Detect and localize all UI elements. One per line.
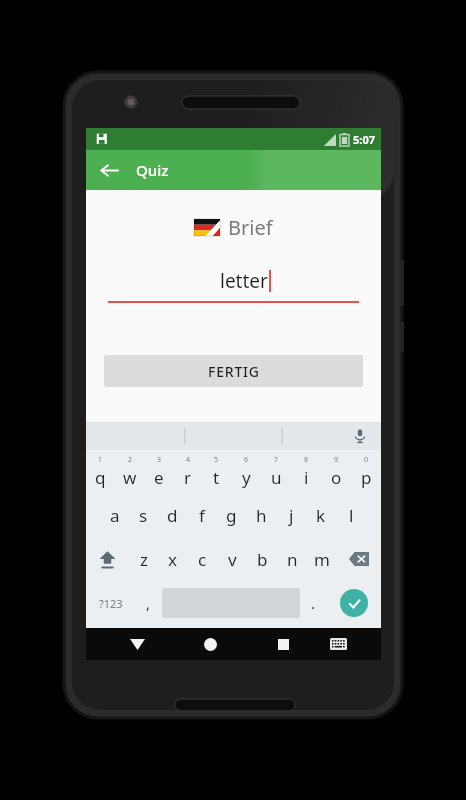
staticText: 2 <box>128 455 133 465</box>
staticText: f <box>199 504 205 527</box>
staticText: c <box>198 548 207 571</box>
staticText: l <box>349 504 354 527</box>
staticText: z <box>140 548 148 571</box>
button[interactable]: 2 <box>115 450 144 493</box>
staticText: m <box>314 548 330 571</box>
button[interactable]: n <box>277 537 307 581</box>
staticText: 8 <box>304 455 309 465</box>
button[interactable]: 0 <box>351 450 381 493</box>
staticText: 1 <box>98 455 103 465</box>
staticText: . <box>311 593 316 613</box>
staticText: i <box>304 466 309 489</box>
button[interactable]: 1 <box>86 450 115 493</box>
staticText: Brief <box>228 214 273 241</box>
button[interactable]: 5 <box>202 450 231 493</box>
staticText: y <box>242 466 251 489</box>
button[interactable]: Back <box>113 628 162 660</box>
button[interactable]: m <box>307 537 337 581</box>
staticText: k <box>316 504 326 527</box>
button[interactable]: k <box>306 493 336 537</box>
button[interactable]: h <box>246 493 276 537</box>
staticText: 7 <box>274 455 279 465</box>
button[interactable]: a <box>100 493 129 537</box>
button[interactable]: s <box>129 493 158 537</box>
staticText: 4 <box>186 455 191 465</box>
staticText: h <box>256 504 267 527</box>
button[interactable]: , <box>135 581 162 625</box>
staticText: j <box>289 504 294 527</box>
button[interactable]: 7 <box>261 450 291 493</box>
staticText: r <box>184 466 192 489</box>
staticText: d <box>167 504 178 527</box>
staticText: n <box>287 548 298 571</box>
staticText: w <box>123 466 137 489</box>
button[interactable]: g <box>216 493 246 537</box>
button[interactable]: 6 <box>231 450 261 493</box>
staticText: q <box>95 466 106 489</box>
button[interactable]: Back <box>92 153 126 187</box>
button[interactable]: Change keyboard <box>313 628 363 660</box>
button[interactable]: FERTIG <box>104 355 363 387</box>
staticText: 9 <box>334 455 339 465</box>
button[interactable]: Home <box>185 628 235 660</box>
button[interactable]: c <box>187 537 217 581</box>
button[interactable]: d <box>158 493 187 537</box>
button[interactable]: l <box>336 493 366 537</box>
button[interactable]: 8 <box>291 450 321 493</box>
staticText: 6 <box>244 455 249 465</box>
staticText: Quiz <box>136 160 169 180</box>
staticText: ?123 <box>99 596 123 611</box>
button[interactable]: z <box>129 537 158 581</box>
staticText: v <box>228 548 237 571</box>
staticText: letter <box>220 268 268 294</box>
staticText: s <box>139 504 148 527</box>
button[interactable]: ?123 <box>86 581 135 625</box>
staticText: x <box>168 548 177 571</box>
button[interactable]: x <box>158 537 187 581</box>
staticText: o <box>331 466 342 489</box>
button[interactable]: Enter <box>340 589 368 617</box>
staticText: 5:07 <box>353 132 375 147</box>
button[interactable]: v <box>217 537 247 581</box>
staticText: FERTIG <box>208 362 260 381</box>
staticText: t <box>213 466 220 489</box>
staticText: a <box>110 504 120 527</box>
button[interactable]: 9 <box>321 450 351 493</box>
button[interactable]: b <box>247 537 277 581</box>
staticText: e <box>154 466 164 489</box>
staticText: g <box>226 504 237 527</box>
staticText: u <box>271 466 282 489</box>
button[interactable]: Voice input <box>349 425 371 447</box>
button[interactable]: Shift <box>86 537 129 581</box>
staticText: , <box>146 593 151 613</box>
staticText: p <box>361 466 372 489</box>
button[interactable]: f <box>187 493 216 537</box>
staticText: 0 <box>364 455 369 465</box>
button[interactable]: . <box>300 581 327 625</box>
button[interactable]: Recent apps <box>258 628 308 660</box>
button[interactable]: 4 <box>173 450 202 493</box>
staticText: b <box>257 548 268 571</box>
staticText: 3 <box>157 455 162 465</box>
button[interactable]: 3 <box>144 450 173 493</box>
staticText: 5 <box>214 455 219 465</box>
button[interactable]: Backspace <box>337 537 381 581</box>
button[interactable]: j <box>276 493 306 537</box>
